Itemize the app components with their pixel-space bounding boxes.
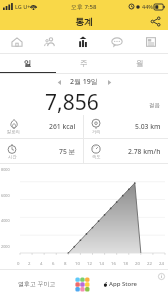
staticText: 75 분 [59,147,76,156]
button[interactable]: Chat [100,30,134,53]
staticText: 칼로리 [7,129,20,134]
staticText: 10 [75,260,80,266]
button[interactable]: 월 [112,54,168,73]
staticText: 2 [28,260,31,266]
staticText: 통계 [75,16,93,27]
staticText: 4000 [1,218,10,223]
staticText: 6 [52,260,55,266]
button[interactable]: News [134,30,168,53]
button[interactable]: Previous day [53,76,65,88]
staticText: 걸음 [149,102,160,109]
staticText: 4 [40,260,43,266]
button[interactable]: 시간 [0,139,83,163]
button[interactable]: 주 [56,54,112,73]
staticText: 거리 [92,129,101,134]
staticText: 일 [24,59,32,68]
staticText: 주 [80,59,88,68]
button[interactable]: Friends [33,30,66,53]
staticText: 7,856 [45,88,99,114]
button[interactable]: Share [148,14,163,29]
staticText: 16 [111,260,116,266]
staticText: 6000 [1,193,10,198]
staticText: 5.03 km [135,122,161,131]
staticText: 44% [142,3,153,10]
button[interactable]: 속도 [84,139,168,163]
button[interactable]: 칼로리 [0,115,83,138]
button[interactable]: Next day [103,76,115,88]
staticText: 열후고 꾸미고 [18,280,56,288]
staticText: 261 kcal [49,122,76,131]
staticText: 18 [123,260,128,266]
staticText: 14 [99,260,104,266]
staticText: App Store [109,280,138,288]
staticText: 12 [87,260,92,266]
button[interactable]: 거리 [84,115,168,138]
staticText: 속도 [92,154,101,159]
staticText: 24 [159,260,164,266]
staticText: 월 [136,59,144,68]
staticText: 20 [135,260,140,266]
button[interactable]: 일 [0,54,56,73]
button[interactable]: 열후고 꾸미고 [0,269,168,299]
staticText: 2000 [1,244,10,249]
button[interactable]: Home [0,30,33,53]
staticText: 8 [64,260,67,266]
staticText: 시간 [8,154,17,159]
button[interactable]: Statistics [66,30,100,53]
staticText: 22 [147,260,152,266]
staticText: 2월 19일 [70,77,98,87]
staticText: LG U+ [15,3,31,10]
staticText: 0 [17,260,20,266]
staticText: 8000 [1,167,10,172]
staticText: 오후 7:58 [71,3,97,11]
button[interactable]: Ad info [158,273,165,280]
staticText: 2.78 km/h [128,147,161,156]
